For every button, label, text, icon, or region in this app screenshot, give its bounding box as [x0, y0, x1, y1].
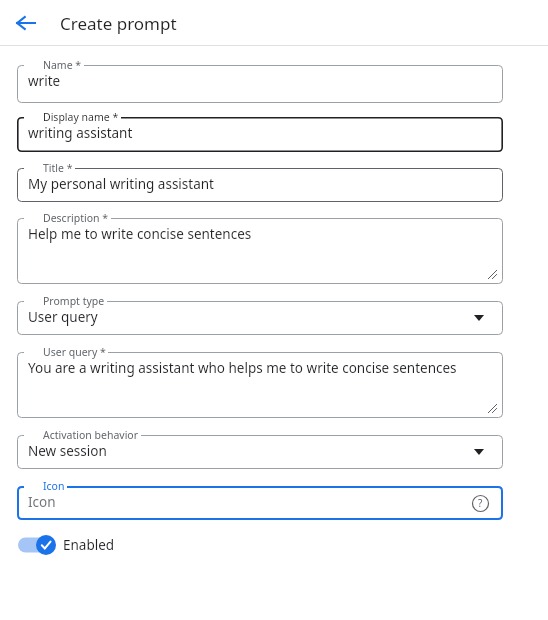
staticText: My personal writing assistant	[28, 175, 214, 193]
button[interactable]: Enabled	[17, 533, 116, 557]
staticText: Icon	[43, 479, 65, 493]
staticText: write	[28, 72, 61, 90]
staticText: Activation behavior	[43, 428, 139, 442]
button[interactable]: write	[17, 58, 503, 103]
button[interactable]: Open dropdown	[469, 308, 489, 328]
button[interactable]: Back	[8, 5, 44, 41]
staticText: You are a writing assistant who helps me…	[28, 359, 457, 377]
button[interactable]: Help me to write concise sentences	[17, 211, 503, 284]
staticText: User query	[28, 308, 98, 326]
staticText: Title *	[43, 161, 73, 175]
button[interactable]: User query	[17, 294, 503, 335]
staticText: writing assistant	[28, 124, 133, 142]
staticText: Prompt type	[43, 294, 105, 308]
staticText: Name *	[43, 58, 82, 72]
button[interactable]: Icon	[17, 479, 503, 520]
button[interactable]: Open dropdown	[469, 442, 489, 462]
staticText: Help me to write concise sentences	[28, 225, 252, 243]
button[interactable]: Help	[469, 492, 491, 514]
button[interactable]: My personal writing assistant	[17, 161, 503, 202]
staticText: Enabled	[63, 536, 115, 554]
button[interactable]: writing assistant	[17, 110, 503, 152]
staticText: Description *	[43, 211, 109, 225]
staticText: Create prompt	[60, 12, 177, 35]
staticText: User query *	[43, 345, 106, 359]
button[interactable]: You are a writing assistant who helps me…	[17, 345, 503, 418]
button[interactable]: New session	[17, 428, 503, 469]
staticText: Display name *	[43, 110, 119, 124]
staticText: Icon	[28, 493, 56, 511]
staticText: New session	[28, 442, 107, 460]
staticText: ?	[478, 496, 483, 510]
